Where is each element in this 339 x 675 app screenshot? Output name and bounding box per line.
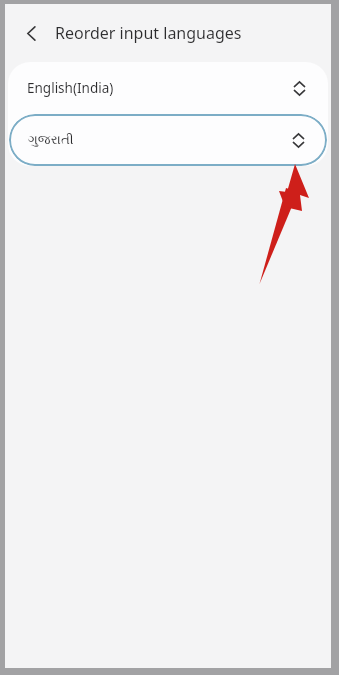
staticText: Reorder input languages xyxy=(55,22,242,44)
staticText: ગુજરાતી xyxy=(28,133,74,147)
staticText: English(India) xyxy=(27,79,114,97)
button[interactable]: Reorder ગુજરાતી xyxy=(283,125,313,155)
button[interactable]: English(India) xyxy=(8,62,328,114)
button[interactable]: ગુજરાતી xyxy=(9,114,327,166)
button[interactable]: Reorder English(India) xyxy=(284,73,314,103)
button[interactable]: Back xyxy=(14,16,48,50)
